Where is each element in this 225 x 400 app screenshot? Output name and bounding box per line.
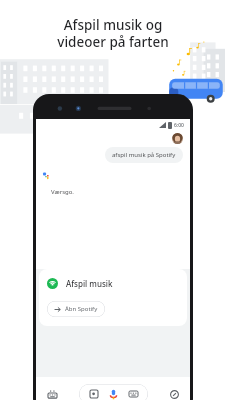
- button[interactable]: afspil musik på Spotify: [105, 147, 183, 163]
- button[interactable]: Profile: [172, 133, 183, 144]
- staticText: Åbn Spotify: [65, 305, 98, 313]
- staticText: Værsgo.: [51, 188, 74, 196]
- button[interactable]: Google Lens: [88, 388, 100, 400]
- button[interactable]: Keyboard: [45, 387, 59, 400]
- button[interactable]: Voice search: [107, 388, 120, 400]
- staticText: Afspil musik og videoer på farten: [57, 16, 169, 51]
- staticText: afspil musik på Spotify: [112, 151, 176, 159]
- button[interactable]: Keyboard input: [127, 388, 139, 400]
- button[interactable]: Værsgo.: [43, 184, 82, 200]
- button[interactable]: Åbn Spotify: [47, 301, 105, 317]
- button[interactable]: Google Lens: [79, 384, 148, 400]
- staticText: Afspil musik: [66, 278, 113, 289]
- button[interactable]: Explore: [167, 387, 181, 400]
- staticText: 6:00: [174, 122, 184, 129]
- button[interactable]: Afspil musik: [39, 269, 187, 326]
